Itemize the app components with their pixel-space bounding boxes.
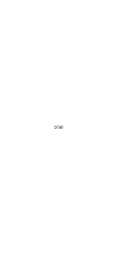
staticText: Этап <box>54 125 63 130</box>
